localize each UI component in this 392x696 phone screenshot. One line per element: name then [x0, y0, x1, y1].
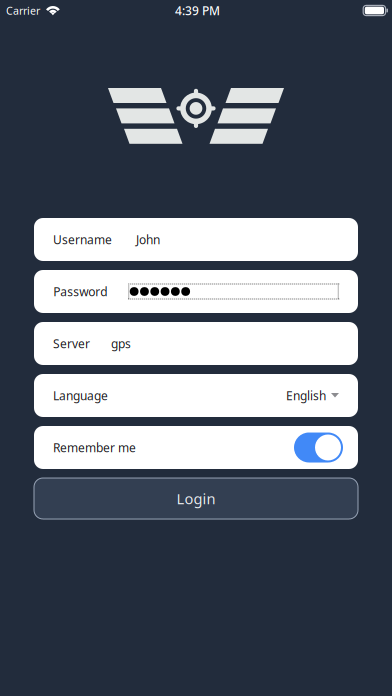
staticText: 4:39 PM	[175, 2, 220, 18]
staticText: English	[286, 387, 326, 403]
staticText: Language	[53, 387, 108, 403]
staticText: Login	[176, 489, 215, 508]
staticText: Server	[53, 335, 90, 351]
staticText: Username	[53, 231, 112, 247]
button[interactable]: Language	[34, 374, 358, 417]
staticText: Password	[53, 283, 107, 299]
staticText: John	[136, 231, 160, 247]
button[interactable]: Remember me	[34, 426, 358, 469]
staticText: gps	[111, 335, 131, 351]
staticText: Carrier	[6, 3, 40, 18]
staticText: Remember me	[53, 439, 136, 455]
button[interactable]: Login	[34, 478, 358, 519]
